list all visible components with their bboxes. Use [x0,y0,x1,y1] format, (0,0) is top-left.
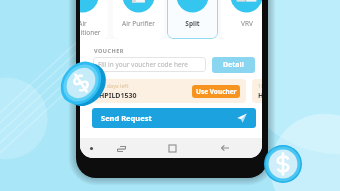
staticText: Detail [223,60,244,70]
staticText: 10 days left [99,82,129,89]
staticText: HPILD1530 [258,91,262,101]
button[interactable]: Home [166,142,178,154]
button[interactable]: Air Conditioner [80,0,108,39]
button[interactable]: 10 days left [252,79,262,103]
staticText: VRV [241,19,253,28]
button[interactable]: VRV [221,0,262,39]
staticText: Split [185,19,200,28]
button[interactable]: Fill in your voucher code here [93,57,206,72]
other: Coin [58,60,104,106]
button[interactable]: Split [167,0,218,39]
button[interactable]: 10 days left [93,79,246,103]
staticText: Send Request [101,113,152,123]
staticText: Air Purifier [122,19,155,28]
staticText: HPILD1530 [99,91,137,101]
staticText: VOUCHER [94,47,124,54]
button[interactable]: Air Purifier [113,0,164,39]
button[interactable]: Back [219,142,231,154]
other: Coin [264,145,302,183]
button[interactable]: Recent apps [114,141,129,156]
staticText: Air Conditioner [80,19,101,37]
staticText: Fill in your voucher code here [98,60,188,69]
staticText: 10 days left [258,82,262,89]
button[interactable]: Use Voucher [192,85,240,98]
staticText: Use Voucher [196,87,237,96]
button[interactable]: Detail [212,57,255,73]
button[interactable]: Send Request [92,108,256,128]
